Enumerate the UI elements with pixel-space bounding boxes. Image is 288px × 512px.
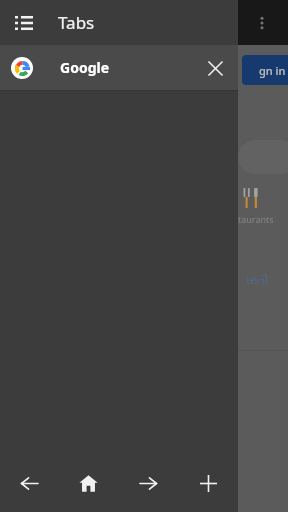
button[interactable]: Tab list — [4, 3, 44, 43]
button[interactable]: Google — [0, 45, 238, 90]
staticText: Google — [60, 58, 110, 77]
button[interactable]: Close tab — [195, 48, 235, 88]
button[interactable]: gn in — [242, 55, 288, 85]
button[interactable]: More options — [244, 5, 280, 41]
button[interactable]: Home — [59, 455, 118, 512]
button[interactable]: Forward — [118, 455, 178, 512]
button[interactable]: New tab — [178, 455, 238, 512]
staticText: gn in — [259, 63, 286, 78]
staticText: taurants — [238, 213, 274, 225]
button[interactable]: Back — [0, 455, 59, 512]
staticText: ારાતી — [238, 275, 269, 286]
staticText: Tabs — [58, 11, 95, 34]
